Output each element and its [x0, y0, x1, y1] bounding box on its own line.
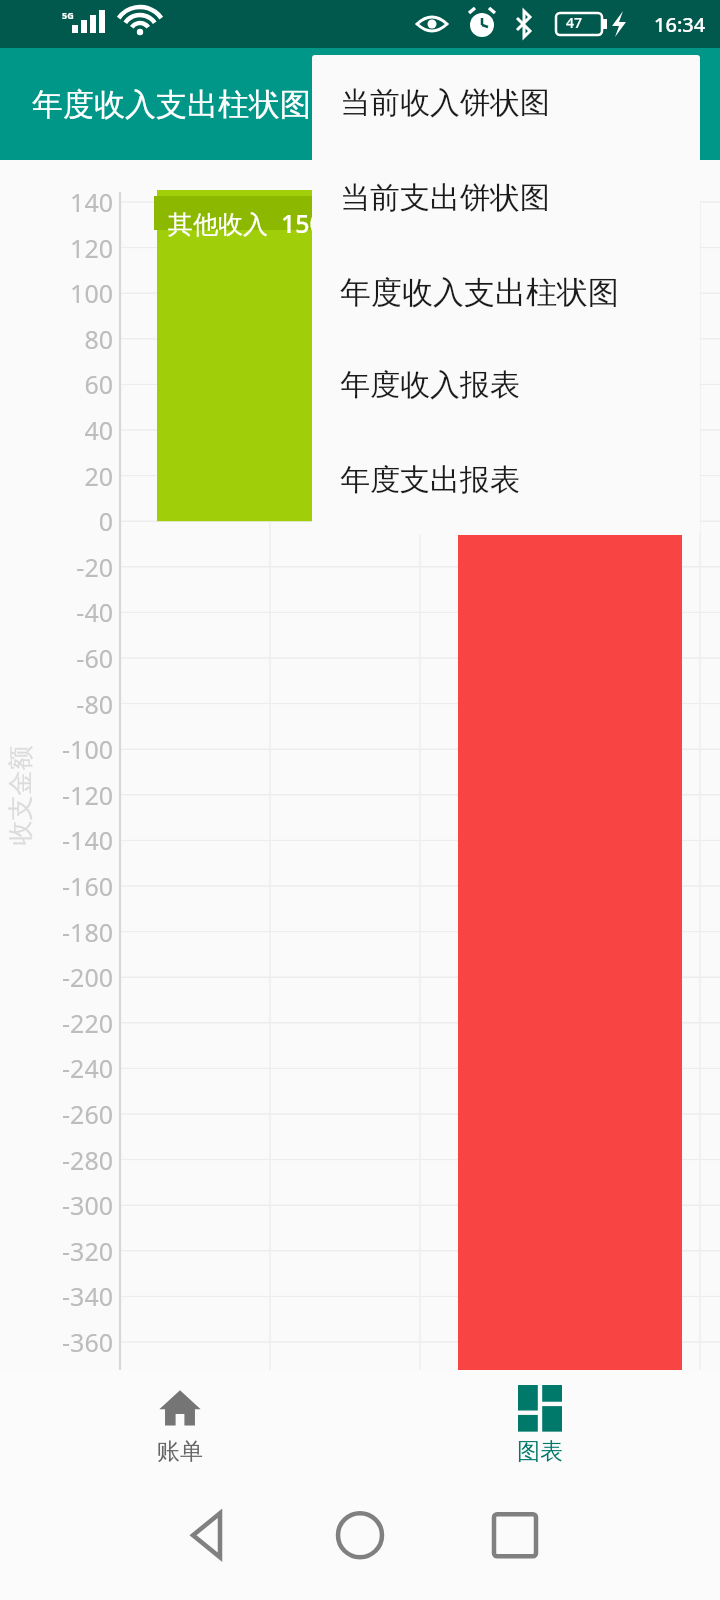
button[interactable]: 年度收入报表 — [312, 351, 700, 419]
staticText: -80 — [0, 687, 113, 721]
staticText: 其他收入 150 — [168, 206, 324, 240]
staticText: 120 — [0, 231, 113, 265]
staticText: 年度支出报表 — [340, 461, 520, 499]
staticText: 80 — [0, 322, 113, 356]
button[interactable]: 当前支出饼状图 — [312, 164, 700, 232]
staticText: -100 — [0, 732, 113, 766]
other: 账单 — [158, 1385, 202, 1429]
button[interactable]: 年度收入支出柱状图 — [312, 258, 700, 326]
staticText: 当前收入饼状图 — [340, 84, 550, 122]
staticText: -280 — [0, 1143, 113, 1177]
staticText: -360 — [0, 1325, 113, 1359]
staticText: -240 — [0, 1051, 113, 1085]
button[interactable]: 账单 — [0, 1370, 360, 1480]
staticText: 账单 — [157, 1437, 203, 1466]
staticText: 年度收入支出柱状图 — [340, 273, 619, 312]
staticText: 100 — [0, 276, 113, 310]
staticText: 年度收入报表 — [340, 366, 520, 404]
staticText: -180 — [0, 915, 113, 949]
staticText: -140 — [0, 823, 113, 857]
staticText: 16:34 — [654, 11, 706, 38]
staticText: -300 — [0, 1188, 113, 1222]
staticText: 当前支出饼状图 — [340, 179, 550, 217]
staticText: 60 — [0, 367, 113, 401]
staticText: 20 — [0, 459, 113, 493]
staticText: 5G — [62, 9, 74, 21]
staticText: -340 — [0, 1279, 113, 1313]
staticText: -40 — [0, 595, 113, 629]
staticText: -320 — [0, 1234, 113, 1268]
button[interactable]: 当前收入饼状图 — [312, 69, 700, 137]
staticText: 年度收入支出柱状图 — [32, 85, 311, 124]
staticText: 0 — [0, 504, 113, 538]
staticText: -20 — [0, 550, 113, 584]
other: 图表 — [518, 1385, 562, 1429]
button[interactable]: 年度支出报表 — [312, 446, 700, 514]
staticText: -60 — [0, 641, 113, 675]
staticText: -260 — [0, 1097, 113, 1131]
staticText: 47 — [566, 13, 583, 32]
staticText: -160 — [0, 869, 113, 903]
staticText: -220 — [0, 1006, 113, 1040]
staticText: 140 — [0, 185, 113, 219]
staticText: 图表 — [517, 1437, 563, 1466]
staticText: -200 — [0, 960, 113, 994]
staticText: 40 — [0, 413, 113, 447]
staticText: -120 — [0, 778, 113, 812]
staticText: 收支金额 — [4, 745, 35, 845]
button[interactable]: 图表 — [360, 1370, 720, 1480]
